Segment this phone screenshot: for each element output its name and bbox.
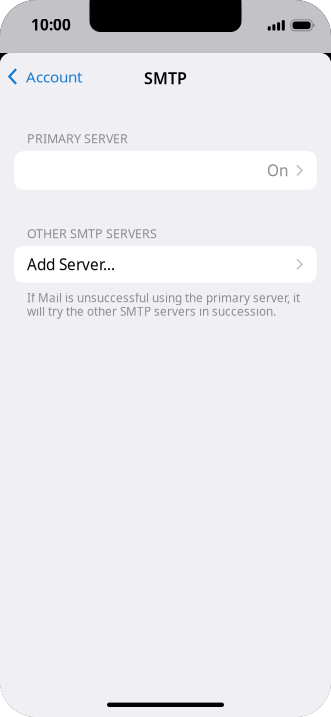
button[interactable]: Add Server...	[14, 246, 317, 283]
staticText: PRIMARY SERVER	[27, 130, 128, 147]
staticText: If Mail is unsuccessful using the primar…	[27, 290, 300, 306]
staticText: OTHER SMTP SERVERS	[27, 225, 157, 242]
staticText: SMTP	[144, 67, 187, 89]
button[interactable]: On	[14, 151, 317, 190]
staticText: Account	[26, 66, 82, 87]
staticText: Add Server...	[27, 254, 115, 275]
staticText: will try the other SMTP servers in succe…	[27, 303, 276, 319]
staticText: 10:00	[31, 14, 71, 35]
staticText: On	[267, 160, 288, 181]
button[interactable]: Account	[0, 55, 90, 97]
